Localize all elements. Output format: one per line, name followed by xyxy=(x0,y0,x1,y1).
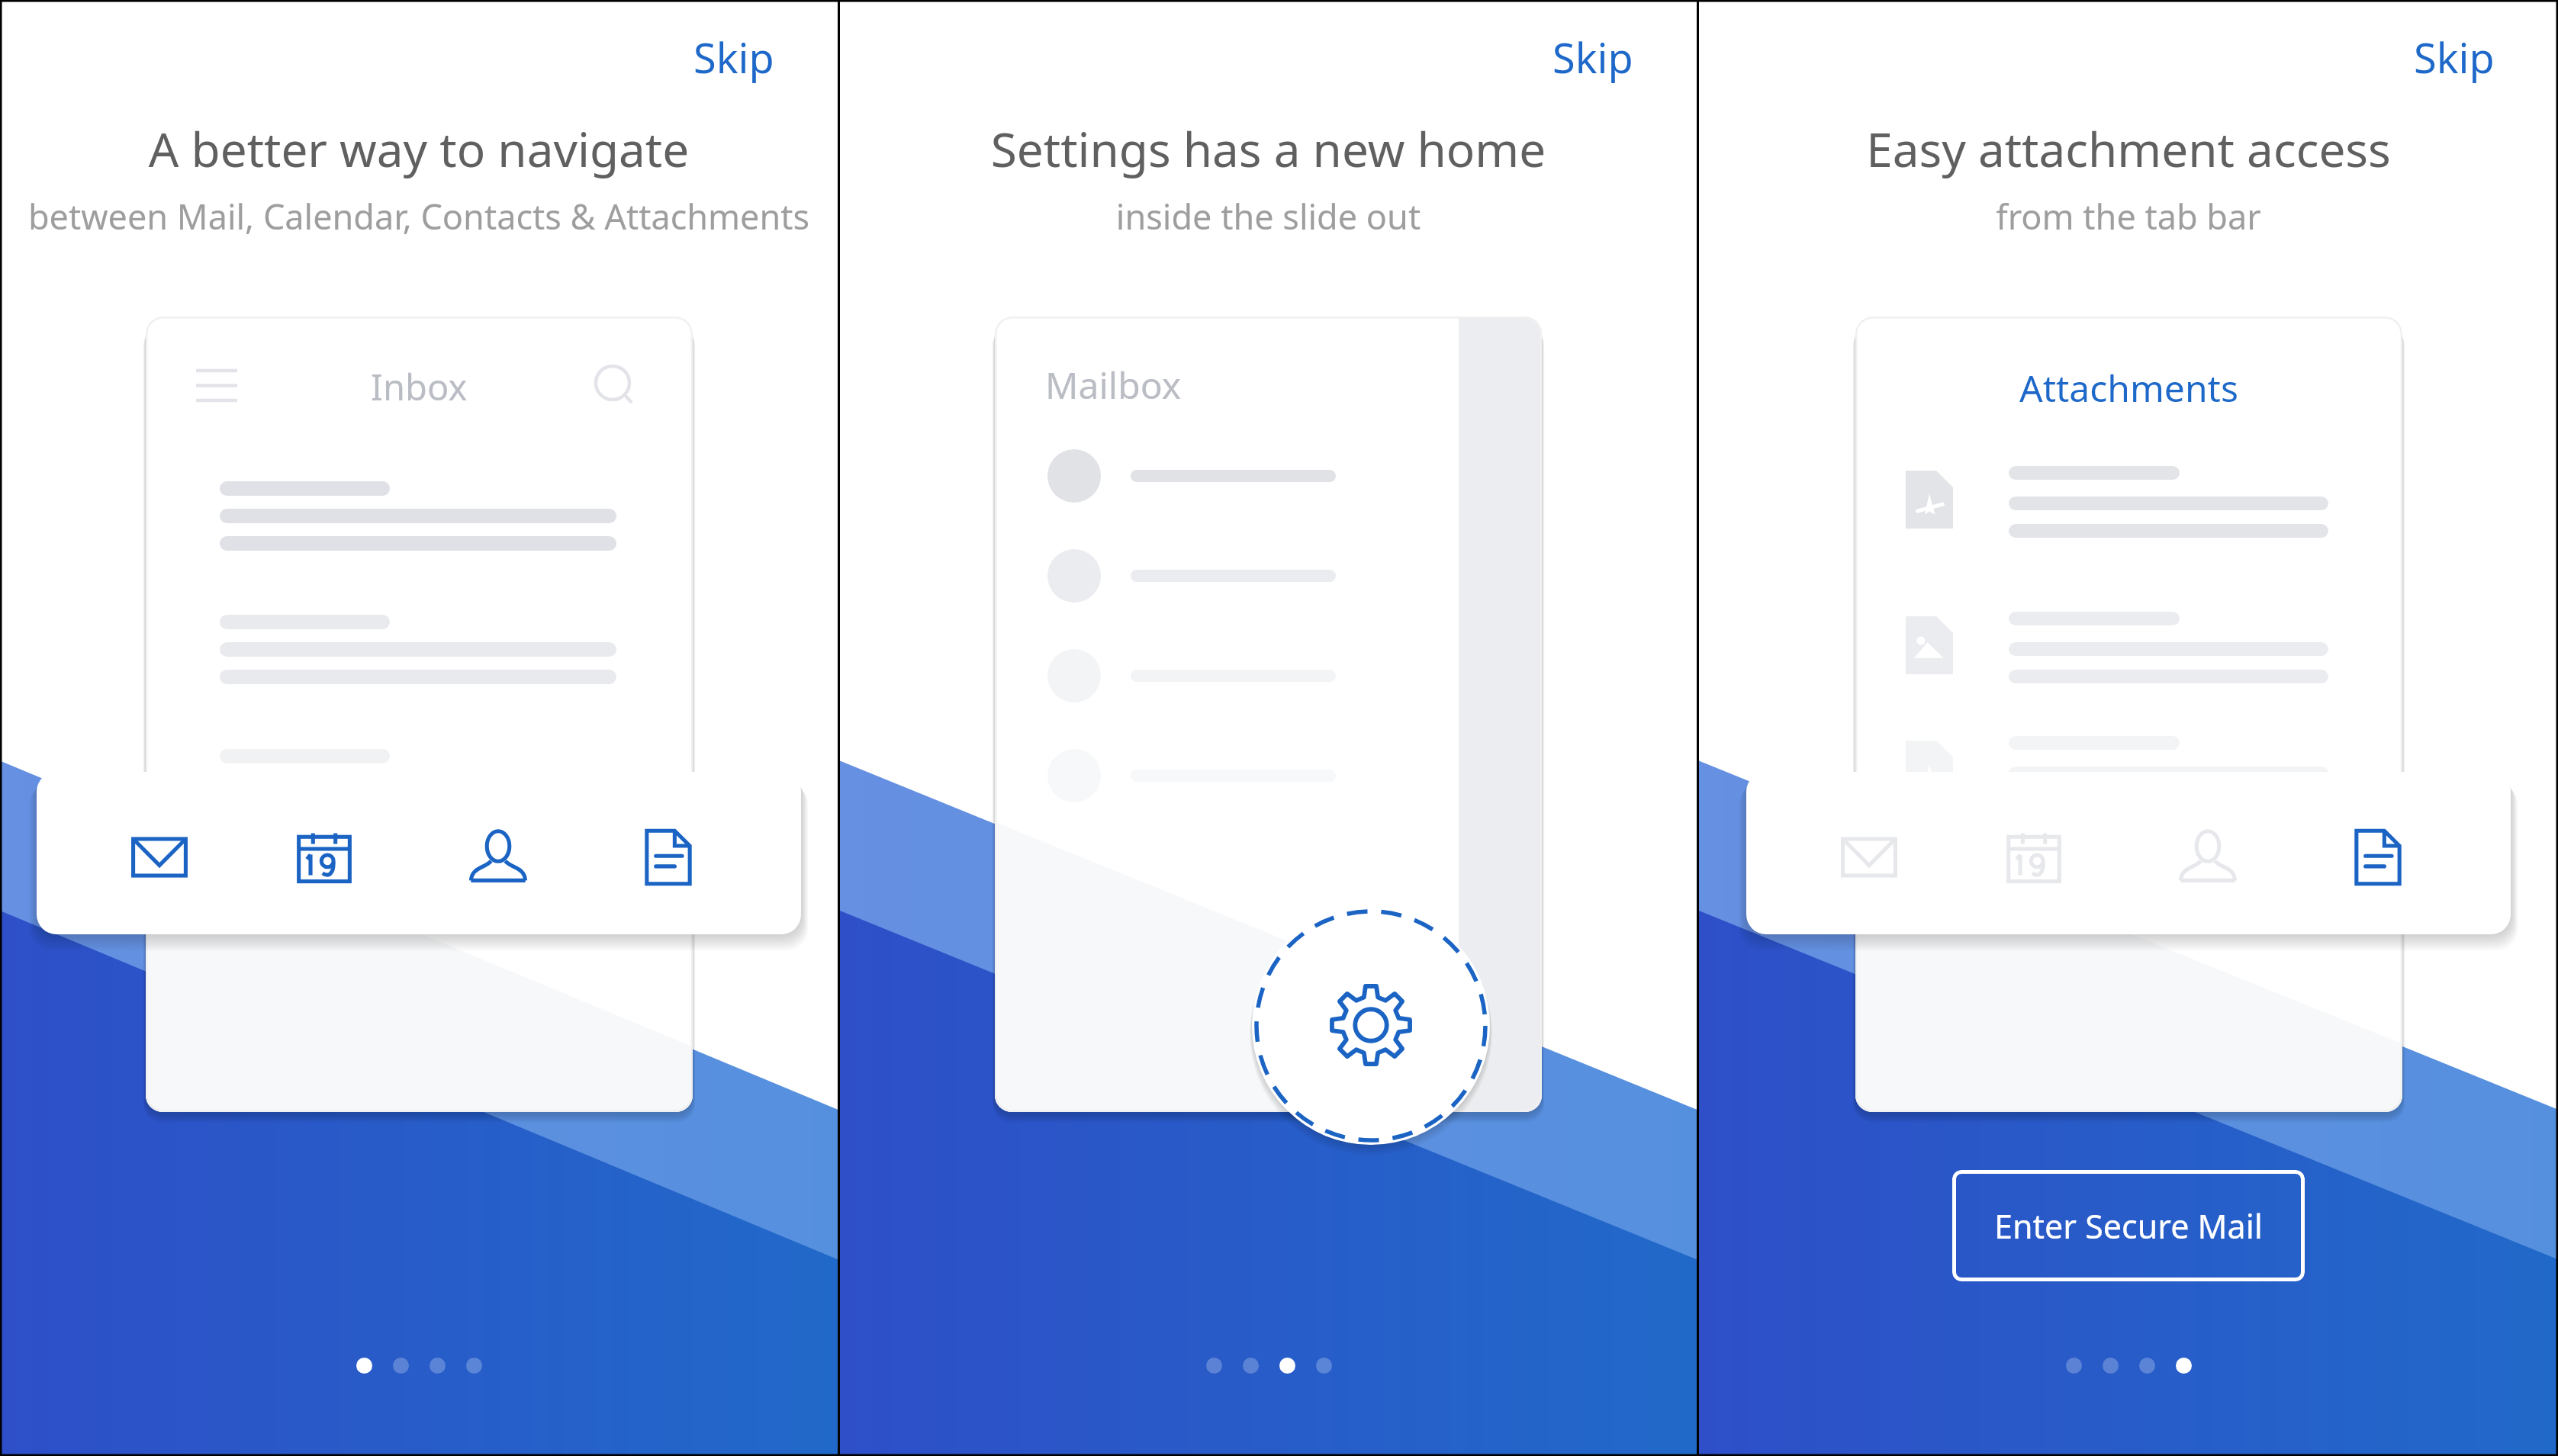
staticText: inside the slide out xyxy=(840,193,1697,239)
button[interactable]: Page 2 xyxy=(382,1347,419,1384)
button[interactable]: Skip xyxy=(684,20,783,95)
button[interactable]: Page 3 xyxy=(1269,1347,1305,1384)
button[interactable]: Attachments xyxy=(587,772,750,934)
staticText: Inbox xyxy=(371,362,468,411)
button[interactable]: Page 1 xyxy=(2055,1347,2092,1384)
button[interactable]: Contacts xyxy=(2126,772,2289,934)
button[interactable]: Page 3 xyxy=(419,1347,455,1384)
button[interactable]: Calendar xyxy=(243,772,406,934)
button[interactable]: Page 4 xyxy=(455,1347,492,1384)
button[interactable]: Settings xyxy=(1252,907,1490,1145)
button[interactable]: Mail xyxy=(78,772,241,934)
button[interactable]: Page 4 xyxy=(1305,1347,1342,1384)
button[interactable]: Enter Secure Mail xyxy=(1952,1170,2305,1281)
button[interactable]: Attachments xyxy=(2296,772,2460,934)
staticText: Easy attachment access xyxy=(1699,117,2558,181)
button[interactable]: Page 1 xyxy=(1195,1347,1232,1384)
staticText: Settings has a new home xyxy=(840,117,1697,181)
button[interactable]: Page 4 xyxy=(2165,1347,2202,1384)
button[interactable]: Skip xyxy=(1543,20,1643,95)
staticText: Skip xyxy=(1552,29,1633,85)
staticText: A better way to navigate xyxy=(0,117,838,181)
staticText: Attachments xyxy=(2019,363,2238,413)
staticText: Mailbox xyxy=(1045,360,1182,410)
button[interactable]: Skip xyxy=(2405,20,2504,95)
staticText: Skip xyxy=(2414,29,2495,85)
button[interactable]: Contacts xyxy=(417,772,580,934)
button[interactable]: Page 1 xyxy=(346,1347,382,1384)
staticText: from the tab bar xyxy=(1699,193,2558,239)
staticText: Skip xyxy=(693,29,774,85)
button[interactable]: Calendar xyxy=(1952,772,2116,934)
button[interactable]: Mail xyxy=(1787,772,1951,934)
button[interactable]: Page 3 xyxy=(2128,1347,2165,1384)
staticText: Enter Secure Mail xyxy=(1994,1204,2263,1249)
staticText: between Mail, Calendar, Contacts & Attac… xyxy=(0,193,838,239)
button[interactable]: Page 2 xyxy=(1232,1347,1269,1384)
button[interactable]: Page 2 xyxy=(2092,1347,2128,1384)
